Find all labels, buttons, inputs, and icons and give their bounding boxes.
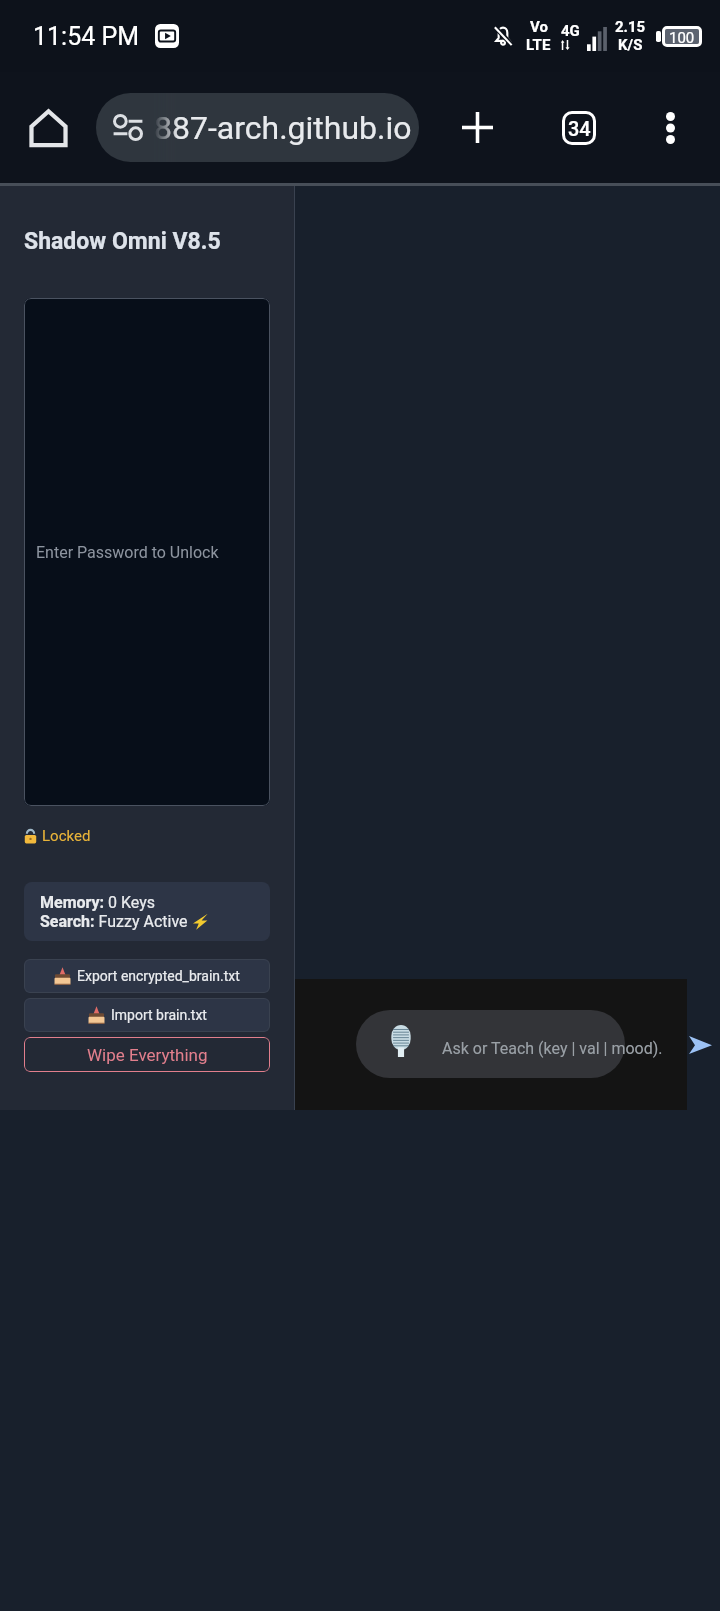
staticText: 100 — [669, 29, 695, 44]
staticText: Vo — [530, 18, 548, 36]
button[interactable]: New tab — [419, 72, 536, 183]
staticText: Shadow Omni V8.5 — [24, 228, 221, 255]
staticText: Search: Fuzzy Active — [40, 912, 192, 931]
staticText: LTE — [526, 36, 551, 54]
button[interactable]: More options — [621, 72, 720, 183]
staticText: Locked — [42, 827, 91, 845]
staticText: 887-arch.github.io — [154, 109, 412, 147]
staticText: Memory: 0 Keys — [40, 893, 156, 912]
button[interactable]: Tabs — [536, 72, 621, 183]
staticText: K/S — [618, 36, 643, 54]
button[interactable]: Wipe Everything — [24, 1037, 270, 1072]
staticText: 34 — [568, 117, 591, 140]
button[interactable]: Home — [0, 72, 96, 183]
button[interactable]: 887-arch.github.io — [96, 93, 419, 162]
staticText: Export encrypted_brain.txt — [77, 968, 240, 984]
button[interactable]: Send — [683, 1028, 717, 1062]
staticText: Import brain.txt — [111, 1007, 207, 1023]
staticText: Ask or Teach (key | val | mood). — [442, 1039, 663, 1058]
staticText: 2.15 — [615, 18, 646, 36]
button[interactable]: Import brain.txt — [24, 998, 270, 1032]
button[interactable] — [356, 1010, 625, 1078]
staticText: 11:54 PM — [33, 22, 140, 51]
button[interactable]: Export encrypted_brain.txt — [24, 959, 270, 993]
staticText: Enter Password to Unlock — [36, 543, 219, 562]
staticText: Wipe Everything — [87, 1045, 208, 1065]
button[interactable]: Enter Password to Unlock — [24, 298, 270, 806]
staticText: 4G — [561, 22, 580, 40]
